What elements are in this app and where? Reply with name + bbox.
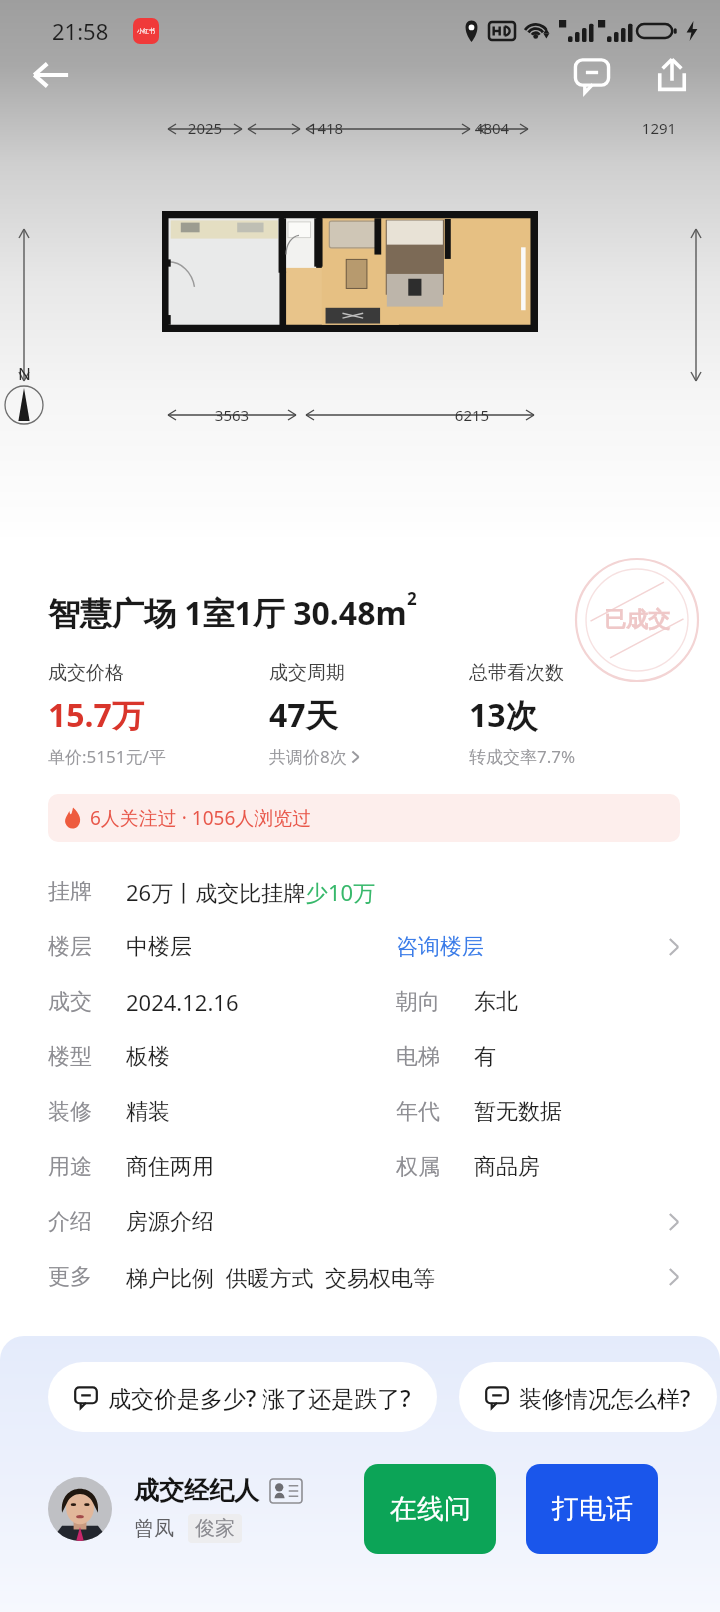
- staticText: 成交: [48, 988, 126, 1016]
- staticText: 21:58: [52, 16, 109, 46]
- staticText: 小红书: [137, 27, 155, 35]
- staticText: 梯户比例 供暖方式 交易权电等: [126, 1262, 435, 1292]
- staticText: 少10万: [306, 877, 376, 907]
- staticText: 成交价是多少? 涨了还是跌了?: [108, 1382, 411, 1413]
- staticText: 1291: [633, 118, 685, 138]
- button[interactable]: 装修情况怎么样?: [459, 1362, 717, 1432]
- staticText: 权属: [396, 1153, 474, 1181]
- staticText: 挂牌: [48, 878, 126, 906]
- staticText: 26万丨成交比挂牌: [126, 877, 306, 907]
- staticText: 1418: [300, 118, 352, 138]
- staticText: 总带看次数: [469, 661, 564, 685]
- staticText: 年代: [396, 1098, 474, 1126]
- staticText: 转成交率7.7%: [469, 745, 576, 768]
- staticText: 已成交: [604, 606, 670, 634]
- staticText: 东北: [474, 988, 518, 1016]
- staticText: 成交价格: [48, 661, 124, 685]
- staticText: 15.7万: [48, 693, 144, 737]
- staticText: 咨询楼层: [396, 933, 484, 961]
- staticText: N: [18, 362, 31, 385]
- staticText: 曾凤: [134, 1516, 174, 1541]
- staticText: 更多: [48, 1263, 126, 1291]
- staticText: 成交经纪人: [134, 1475, 259, 1506]
- staticText: 13次: [469, 693, 538, 737]
- staticText: 楼层: [48, 933, 126, 961]
- staticText: 楼型: [48, 1043, 126, 1071]
- button[interactable]: 更多: [48, 1249, 680, 1304]
- button[interactable]: 成交价是多少? 涨了还是跌了?: [48, 1362, 437, 1432]
- button[interactable]: 6人关注过 · 1056人浏览过: [48, 794, 680, 842]
- staticText: 2: [407, 587, 417, 610]
- staticText: 打电话: [552, 1492, 633, 1526]
- button[interactable]: 介绍: [48, 1194, 680, 1249]
- staticText: 商品房: [474, 1153, 540, 1181]
- button[interactable]: Feedback: [566, 49, 618, 101]
- button[interactable]: 在线问: [364, 1464, 496, 1554]
- staticText: 在线问: [390, 1492, 471, 1526]
- staticText: 智慧广场 1室1厅 30.48m: [48, 591, 407, 635]
- staticText: 单价:5151元/平: [48, 745, 166, 768]
- button[interactable]: Back: [22, 46, 80, 104]
- staticText: 俊家: [195, 1516, 235, 1541]
- staticText: 成交周期: [269, 661, 345, 685]
- button[interactable]: 打电话: [526, 1464, 658, 1554]
- staticText: 装修: [48, 1098, 126, 1126]
- staticText: 2024.12.16: [126, 987, 396, 1017]
- staticText: 3563: [206, 405, 258, 425]
- staticText: 精装: [126, 1098, 396, 1126]
- staticText: 4804: [466, 118, 518, 138]
- button[interactable]: Share: [646, 49, 698, 101]
- staticText: 2025: [179, 118, 231, 138]
- staticText: 商住两用: [126, 1153, 396, 1181]
- staticText: 中楼层: [126, 933, 396, 961]
- button[interactable]: 成交经纪人: [48, 1475, 303, 1543]
- staticText: 装修情况怎么样?: [519, 1382, 691, 1413]
- staticText: 6215: [446, 405, 498, 425]
- staticText: 用途: [48, 1153, 126, 1181]
- staticText: 共调价8次: [269, 745, 347, 768]
- staticText: 47天: [269, 693, 338, 737]
- staticText: 朝向: [396, 988, 474, 1016]
- staticText: 介绍: [48, 1208, 126, 1236]
- staticText: 电梯: [396, 1043, 474, 1071]
- button[interactable]: 楼层: [48, 919, 680, 974]
- staticText: 房源介绍: [126, 1208, 214, 1236]
- staticText: 暂无数据: [474, 1098, 562, 1126]
- staticText: 有: [474, 1043, 496, 1071]
- staticText: 板楼: [126, 1043, 396, 1071]
- staticText: 6人关注过 · 1056人浏览过: [90, 805, 312, 831]
